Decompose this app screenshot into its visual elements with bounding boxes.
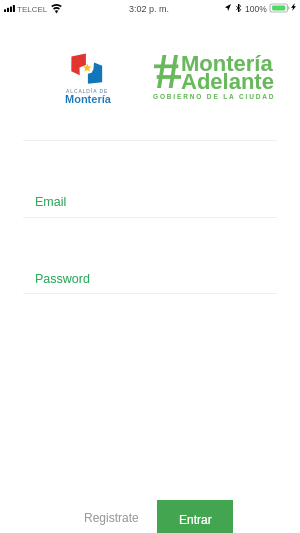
staticText: TELCEL [17,5,48,14]
staticText: ALCALDÍA DE [66,88,109,94]
staticText: Adelante [181,69,274,94]
staticText: Password [35,272,90,286]
staticText: Email [35,195,67,209]
staticText: Montería [181,51,273,76]
button[interactable]: Registrate [77,503,145,531]
staticText: Entrar [179,513,212,526]
button[interactable]: Entrar [157,500,233,533]
staticText: Montería [65,93,111,105]
staticText: Registrate [84,511,139,524]
staticText: GOBIERNO DE LA CIUDAD [153,93,276,100]
staticText: 3:02 p. m. [129,4,170,14]
staticText: 100% [245,4,267,13]
